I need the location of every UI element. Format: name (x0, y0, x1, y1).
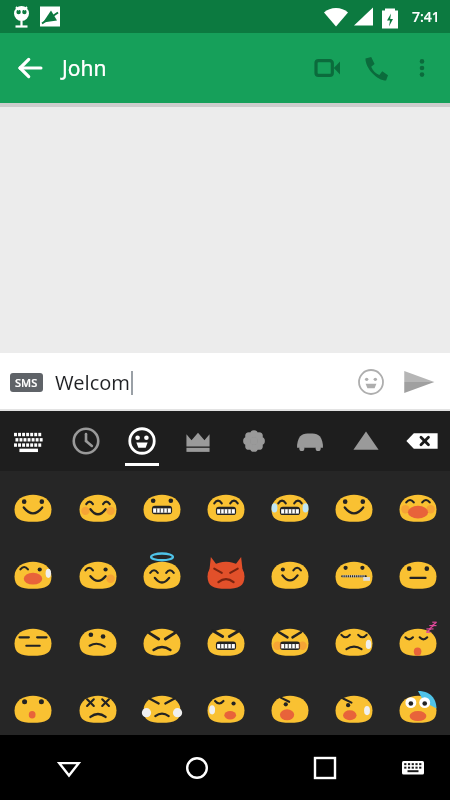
button[interactable]: Send (394, 357, 444, 407)
staticText: John (62, 54, 107, 83)
button[interactable]: Hide keyboard (41, 740, 97, 796)
button[interactable]: Emoji 11 (194, 542, 258, 601)
button[interactable]: Emoji 19 (258, 609, 322, 668)
button[interactable]: Emoji 21 (386, 609, 450, 668)
button[interactable]: Emoji 8 (0, 542, 65, 601)
button[interactable]: Emoji 15 (0, 609, 65, 668)
button[interactable]: Emoji 25 (194, 676, 258, 735)
button[interactable]: SMS (15, 375, 38, 390)
button[interactable]: Home (169, 740, 225, 796)
button[interactable]: Emoji 27 (322, 676, 386, 735)
button[interactable]: Emoji 24 (130, 676, 194, 735)
button[interactable]: Insert emoji (348, 359, 394, 405)
button[interactable]: Back (6, 44, 54, 92)
staticText: SMS (15, 375, 38, 390)
button[interactable]: Crown (170, 411, 226, 471)
staticText: 7:41 (412, 7, 440, 26)
button[interactable]: Symbols (338, 411, 394, 471)
button[interactable]: Backspace (394, 411, 450, 471)
staticText: Welcom (55, 369, 131, 396)
button[interactable]: Emoji 10 (130, 542, 194, 601)
button[interactable]: Emoji 17 (130, 609, 194, 668)
button[interactable]: Emoji 12 (258, 542, 322, 601)
button[interactable]: Emoji 16 (65, 609, 130, 668)
button[interactable]: Emoji 26 (258, 676, 322, 735)
button[interactable]: Nature (226, 411, 282, 471)
button[interactable]: Change keyboard (389, 744, 437, 792)
button[interactable]: Emoji 4 (194, 475, 258, 534)
button[interactable]: Travel (282, 411, 338, 471)
button[interactable]: Emoji 6 (322, 475, 386, 534)
button[interactable]: Emoji 22 (0, 676, 65, 735)
button[interactable]: Emoji 7 (386, 475, 450, 534)
button[interactable]: More options (400, 46, 444, 90)
button[interactable]: Emoji 1 (0, 475, 65, 534)
button[interactable]: Emoji 23 (65, 676, 130, 735)
button[interactable]: Emoji 20 (322, 609, 386, 668)
button[interactable]: Emoji 18 (194, 609, 258, 668)
button[interactable]: Emoji 13 (322, 542, 386, 601)
button[interactable]: Smileys (114, 411, 170, 471)
button[interactable]: Emoji 28 (386, 676, 450, 735)
button[interactable]: Video call (304, 44, 352, 92)
button[interactable]: Emoji 5 (258, 475, 322, 534)
button[interactable]: Emoji 3 (130, 475, 194, 534)
button[interactable]: Recent apps (297, 740, 353, 796)
button[interactable]: Emoji 14 (386, 542, 450, 601)
button[interactable]: Emoji 9 (65, 542, 130, 601)
button[interactable]: Recent (57, 411, 114, 471)
button[interactable]: Call (352, 44, 400, 92)
button[interactable]: Keyboard (0, 411, 57, 471)
button[interactable]: Emoji 2 (65, 475, 130, 534)
